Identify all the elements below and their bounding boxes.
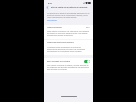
staticText: Cette mesure correspond à la capacité de… [47, 30, 90, 36]
staticText: La capacité de la batterie rechargeable … [47, 12, 90, 18]
staticText: Rech. optimisée de la batterie [47, 60, 70, 62]
staticText: Informations [47, 19, 57, 21]
button[interactable]: Rech. optimisée de la batterie [47, 58, 90, 64]
staticText: Pour réduire l'usure de la batterie, l'i… [47, 64, 90, 70]
button[interactable]: Retour [45, 5, 50, 10]
staticText: 9:41 [48, 2, 53, 5]
staticText: La batterie prend actuellement en charge… [47, 46, 90, 52]
other: Recharge optimisée activée [84, 60, 90, 63]
staticText: Capacité de performance optimale [47, 41, 74, 43]
staticText: Capacité maximum [47, 26, 62, 28]
staticText: État de santé de la batterie en recharge [51, 6, 88, 9]
staticText: 86 % [86, 26, 90, 28]
button[interactable]: Informations [47, 19, 57, 21]
